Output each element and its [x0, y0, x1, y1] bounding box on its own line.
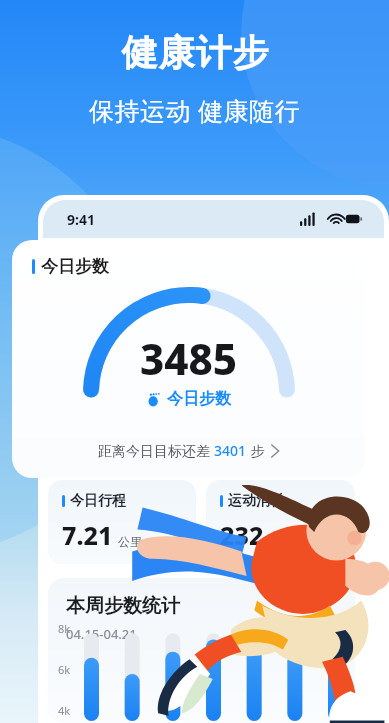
staticText: 本周步数统计: [66, 594, 180, 618]
staticText: 9:41: [67, 210, 95, 229]
button[interactable]: 距离今日目标还差: [90, 437, 287, 464]
staticText: 今日行程: [70, 492, 126, 510]
staticText: 8k: [58, 621, 71, 636]
staticText: 3401: [214, 441, 247, 460]
other: Footprint: [147, 392, 162, 407]
staticText: 距离今日目标还差: [98, 441, 214, 460]
staticText: 步: [247, 441, 265, 460]
staticText: 运动消耗: [228, 492, 284, 510]
button[interactable]: 今日步数: [12, 240, 365, 478]
staticText: 4k: [58, 703, 71, 718]
staticText: 保持运动 健康随行: [89, 93, 301, 127]
button[interactable]: 今日行程: [48, 480, 196, 564]
staticText: 6k: [58, 662, 71, 677]
staticText: 今日步数: [167, 389, 231, 409]
staticText: 今日步数: [41, 256, 109, 277]
button[interactable]: 本周步数统计: [48, 578, 355, 723]
staticText: 04.15-04.21: [66, 625, 137, 643]
button[interactable]: 运动消耗: [206, 480, 355, 564]
staticText: 公里: [118, 534, 142, 549]
staticText: 232: [220, 518, 264, 552]
staticText: 3485: [140, 330, 238, 387]
staticText: 健康计步: [121, 30, 269, 75]
staticText: 7.21: [62, 518, 113, 552]
other: Running illustration: [127, 478, 387, 723]
